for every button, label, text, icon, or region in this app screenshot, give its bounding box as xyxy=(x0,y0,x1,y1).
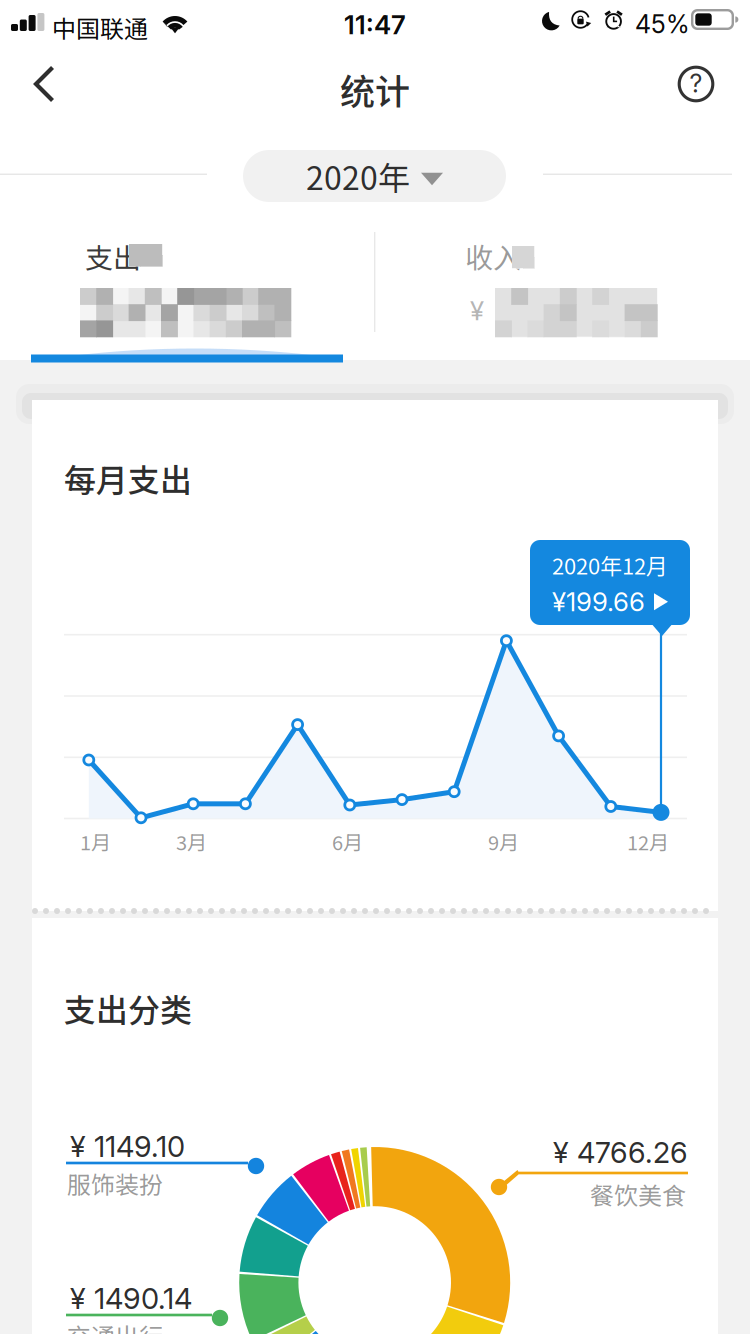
staticText: 45% xyxy=(635,9,690,39)
staticText: ¥199.66 xyxy=(552,586,645,617)
staticText: 6月 xyxy=(332,827,363,856)
staticText: ¥ 1490.14 xyxy=(70,1281,192,1316)
staticText: 统计 xyxy=(340,64,410,115)
staticText: 中国联通 xyxy=(52,10,148,45)
staticText: 3月 xyxy=(176,827,207,856)
staticText: 服饰装扮 xyxy=(67,1166,163,1201)
staticText: ¥ 4766.26 xyxy=(553,1135,688,1170)
staticText: ¥ 1149.10 xyxy=(70,1129,185,1164)
staticText: 收入 xyxy=(465,236,521,276)
button[interactable]: Back xyxy=(0,0,64,64)
button[interactable]: 支出 xyxy=(0,0,750,1334)
staticText: 9月 xyxy=(488,827,519,856)
button[interactable]: 2020年 xyxy=(243,150,506,202)
staticText: 1月 xyxy=(80,827,111,856)
staticText: 支出 xyxy=(85,236,141,276)
staticText: 每月支出 xyxy=(64,455,192,501)
staticText: 餐饮美食 xyxy=(590,1177,686,1212)
staticText: 支出分类 xyxy=(64,985,192,1031)
staticText: ¥ xyxy=(470,295,484,326)
staticText: 11:47 xyxy=(344,9,406,40)
staticText: 12月 xyxy=(627,827,669,856)
staticText: 交通出行 xyxy=(67,1318,163,1334)
button[interactable]: Help xyxy=(0,0,64,64)
staticText: 2020年12月 xyxy=(552,549,668,581)
button[interactable]: 收入 xyxy=(0,0,162,49)
staticText: 2020年 xyxy=(306,153,410,199)
staticText: ? xyxy=(689,68,702,99)
